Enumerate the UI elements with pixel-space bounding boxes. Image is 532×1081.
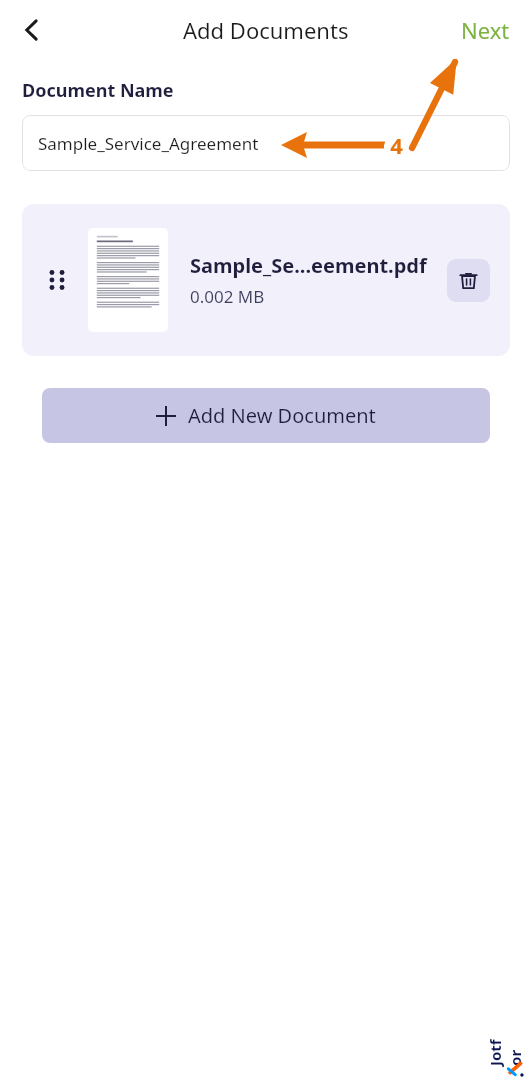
staticText: 0.002 MB xyxy=(190,285,265,308)
button[interactable]: Back xyxy=(8,6,56,54)
button[interactable]: Reorder xyxy=(42,265,72,295)
button[interactable]: Next xyxy=(457,9,514,51)
staticText: Next xyxy=(461,15,510,45)
staticText: Document Name xyxy=(22,78,174,103)
button[interactable]: Add New Document xyxy=(42,388,490,443)
staticText: Jotform xyxy=(485,1036,532,1066)
staticText: Sample_Se...eement.pdf xyxy=(190,252,427,279)
staticText: 4 xyxy=(390,130,403,160)
button[interactable]: Reorder xyxy=(22,204,510,356)
button[interactable]: Delete xyxy=(447,259,490,302)
staticText: Add New Document xyxy=(188,402,376,429)
staticText: Sample_Service_Agreement xyxy=(38,132,259,155)
staticText: Add Documents xyxy=(183,15,349,45)
button[interactable]: Sample_Service_Agreement xyxy=(22,115,510,171)
